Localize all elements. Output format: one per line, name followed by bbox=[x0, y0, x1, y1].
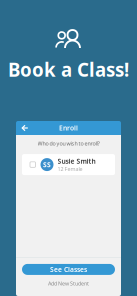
staticText: Who do you wish to enroll? bbox=[37, 140, 99, 147]
staticText: 12 Female bbox=[57, 165, 82, 173]
staticText: See Classes bbox=[50, 265, 87, 274]
button[interactable]: Back bbox=[20, 121, 30, 134]
button[interactable]: Add New Student bbox=[48, 280, 89, 287]
button[interactable]: See Classes bbox=[22, 264, 115, 275]
staticText: Add New Student bbox=[48, 280, 89, 287]
staticText: Enroll bbox=[59, 124, 78, 132]
button[interactable]: SS bbox=[22, 154, 115, 175]
staticText: Susie Smith bbox=[57, 157, 95, 165]
staticText: SS bbox=[43, 160, 51, 169]
staticText: Book a Class! bbox=[8, 57, 129, 82]
